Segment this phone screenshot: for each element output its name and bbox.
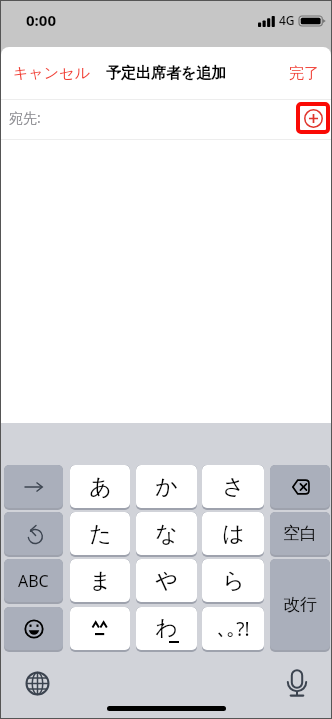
staticText: 空白 [283,523,317,544]
staticText: 改行 [283,594,317,615]
button[interactable]: Emoji [4,607,63,650]
button[interactable]: ABC [4,559,63,602]
staticText: ら [222,567,245,595]
staticText: ABC [18,570,49,592]
button[interactable]: 完了 [277,56,331,91]
staticText: 宛先: [9,108,41,127]
staticText: は [222,520,245,548]
button[interactable]: た [70,512,130,555]
staticText: 予定出席者を追加 [106,64,227,83]
button[interactable]: ら [202,559,264,602]
button[interactable]: Undo [4,512,63,555]
staticText: 4G [279,12,295,28]
button[interactable]: あ [70,465,130,508]
button[interactable]: Add contact [296,102,330,134]
staticText: さ [222,473,245,501]
button[interactable]: Switch keyboard [21,667,53,699]
staticText: キャンセル [13,64,90,83]
button[interactable]: 改行 [270,559,330,650]
staticText: な [155,520,178,548]
button[interactable] [70,607,130,650]
staticText: 0:00 [26,10,56,30]
button[interactable]: ､｡?! [202,607,264,650]
button[interactable]: は [202,512,264,555]
button[interactable]: ま [70,559,130,602]
button[interactable]: 空白 [270,512,330,555]
staticText: か [155,473,178,501]
button[interactable]: Next [4,465,63,508]
button[interactable]: か [136,465,197,508]
button[interactable]: Dictation [281,667,313,699]
staticText: 完了 [289,64,319,83]
staticText: わ [155,614,178,642]
button[interactable]: や [136,559,197,602]
button[interactable]: な [136,512,197,555]
staticText: や [155,567,178,595]
staticText: ､｡?! [217,616,250,642]
button[interactable]: さ [202,465,264,508]
staticText: あ [89,473,112,501]
button[interactable]: Delete [270,465,330,508]
button[interactable]: わ [136,607,197,650]
staticText: ま [89,567,112,595]
button[interactable]: キャンセル [1,56,102,91]
staticText: た [89,520,112,548]
